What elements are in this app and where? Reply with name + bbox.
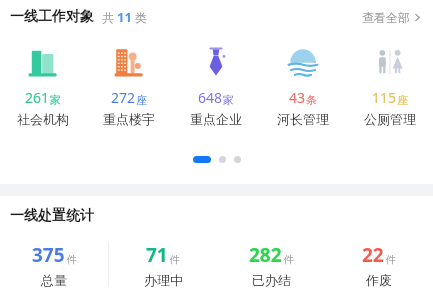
button[interactable]: 71 [109,240,217,290]
staticText: 座 [136,93,147,107]
staticText: 件 [386,253,396,266]
staticText: 家 [50,93,61,107]
staticText: 43 [289,88,306,107]
button[interactable]: 查看全部 [360,6,423,29]
staticText: 家 [223,93,234,107]
staticText: 272 [111,88,136,107]
staticText: 河长管理 [277,111,329,127]
staticText: 件 [284,253,294,266]
staticText: 已办结 [252,272,291,288]
button[interactable]: 河长管理 [259,34,346,127]
staticText: 261 [25,88,50,107]
staticText: 11 [117,8,132,26]
staticText: 公厕管理 [364,111,416,127]
staticText: 社会机构 [17,111,69,127]
staticText: 作废 [366,272,392,288]
staticText: 648 [198,88,223,107]
staticText: 重点企业 [190,111,242,127]
staticText: 115 [372,88,397,107]
staticText: 办理中 [144,272,183,288]
button[interactable]: 375 [0,240,108,290]
staticText: 一线处置统计 [10,207,94,225]
staticText: 类 [135,10,147,25]
staticText: 查看全部 [362,10,410,25]
button[interactable]: 社会机构 [0,34,86,127]
staticText: 件 [170,253,180,266]
button[interactable]: 282 [217,240,325,290]
staticText: 总量 [41,272,67,288]
staticText: 一线工作对象 [10,8,94,26]
staticText: 件 [67,253,77,266]
button[interactable]: 22 [325,240,433,290]
staticText: 重点楼宇 [103,111,155,127]
button[interactable]: 公厕管理 [346,34,433,127]
staticText: 375 [32,242,65,268]
staticText: 条 [306,93,317,107]
staticText: 共 [102,10,114,25]
staticText: 71 [146,242,168,268]
staticText: 282 [249,242,282,268]
button[interactable]: 重点企业 [172,34,259,127]
staticText: 座 [397,93,408,107]
staticText: 22 [362,242,384,268]
button[interactable]: 重点楼宇 [86,34,172,127]
